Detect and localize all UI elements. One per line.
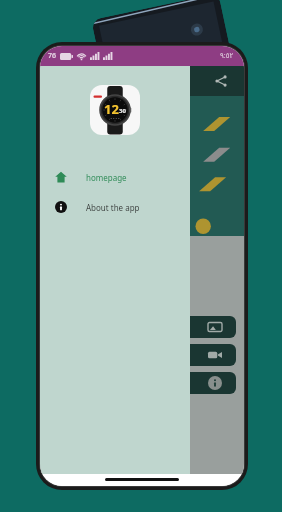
button[interactable]: App icon [90, 85, 140, 135]
staticText: 12 [104, 100, 119, 118]
button[interactable]: Share [212, 72, 230, 90]
button[interactable]: Add photo [44, 316, 236, 338]
button[interactable]: Record video [44, 344, 236, 366]
button[interactable]: homepage [40, 162, 190, 192]
staticText: H S [42, 168, 69, 191]
staticText: ٩:٥٢ [220, 51, 234, 61]
button[interactable]: About the app [40, 192, 190, 222]
button[interactable]: Info [44, 372, 236, 394]
staticText: homepage [86, 172, 127, 183]
staticText: 30 [119, 107, 126, 115]
staticText: About the app [86, 202, 140, 213]
staticText: 76 [48, 51, 57, 61]
